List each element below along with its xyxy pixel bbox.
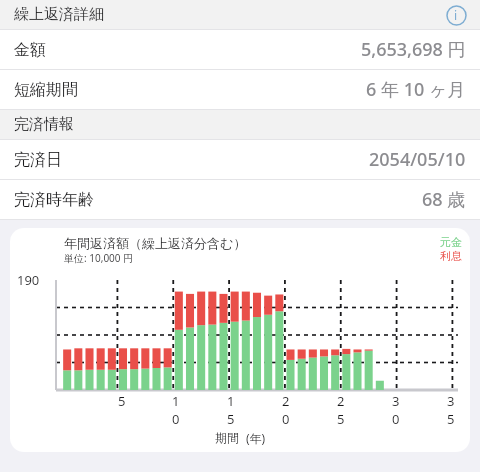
staticText: 期間 xyxy=(215,430,239,445)
staticText: 10 xyxy=(172,392,183,428)
staticText: 2054/05/10 xyxy=(369,147,466,172)
staticText: 6 年 10 ヶ月 xyxy=(366,77,466,102)
staticText: 25 xyxy=(337,392,348,428)
staticText: (年) xyxy=(246,430,266,446)
button[interactable]: 完済時年齢 xyxy=(0,180,480,220)
staticText: 5,653,698 円 xyxy=(361,37,466,62)
staticText: 完済日 xyxy=(14,150,62,170)
staticText: 金額 xyxy=(14,40,46,60)
staticText: 完済情報 xyxy=(14,115,74,134)
staticText: 短縮期間 xyxy=(14,80,78,100)
staticText: 30 xyxy=(392,392,403,428)
staticText: 繰上返済詳細 xyxy=(14,5,104,24)
staticText: 元金 xyxy=(440,235,462,249)
staticText: 68 歳 xyxy=(422,187,466,212)
button[interactable]: 完済日 xyxy=(0,140,480,180)
staticText: 完済時年齢 xyxy=(14,190,94,210)
staticText: 15 xyxy=(227,392,238,428)
staticText: 単位: 10,000 円 xyxy=(64,251,134,265)
button[interactable]: Information xyxy=(444,3,468,27)
button[interactable]: 短縮期間 xyxy=(0,70,480,110)
staticText: 5 xyxy=(118,392,126,410)
button[interactable]: 金額 xyxy=(0,30,480,70)
staticText: 年間返済額（繰上返済分含む） xyxy=(64,235,247,251)
staticText: 利息 xyxy=(440,249,462,263)
staticText: 35 xyxy=(447,392,458,428)
staticText: 20 xyxy=(282,392,293,428)
staticText: 190 xyxy=(17,271,40,289)
staticText: i xyxy=(454,7,458,23)
